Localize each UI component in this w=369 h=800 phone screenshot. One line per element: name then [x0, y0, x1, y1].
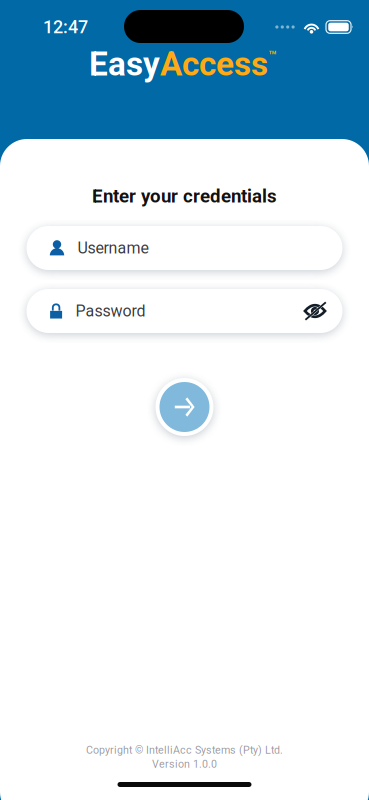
button[interactable]: Sign in — [153, 376, 215, 438]
staticText: Access — [160, 44, 268, 84]
button[interactable]: Username — [26, 226, 342, 270]
staticText: Enter your credentials — [92, 185, 277, 207]
staticText: Password — [75, 302, 145, 320]
staticText: Version 1.0.0 — [152, 758, 217, 770]
button[interactable]: Password — [26, 289, 342, 333]
staticText: Username — [77, 239, 148, 257]
staticText: Copyright © IntelliAcc Systems (Pty) Ltd… — [86, 744, 283, 756]
staticText: Easy — [89, 44, 160, 84]
staticText: ™ — [268, 48, 276, 64]
staticText: 12:47 — [43, 16, 88, 38]
